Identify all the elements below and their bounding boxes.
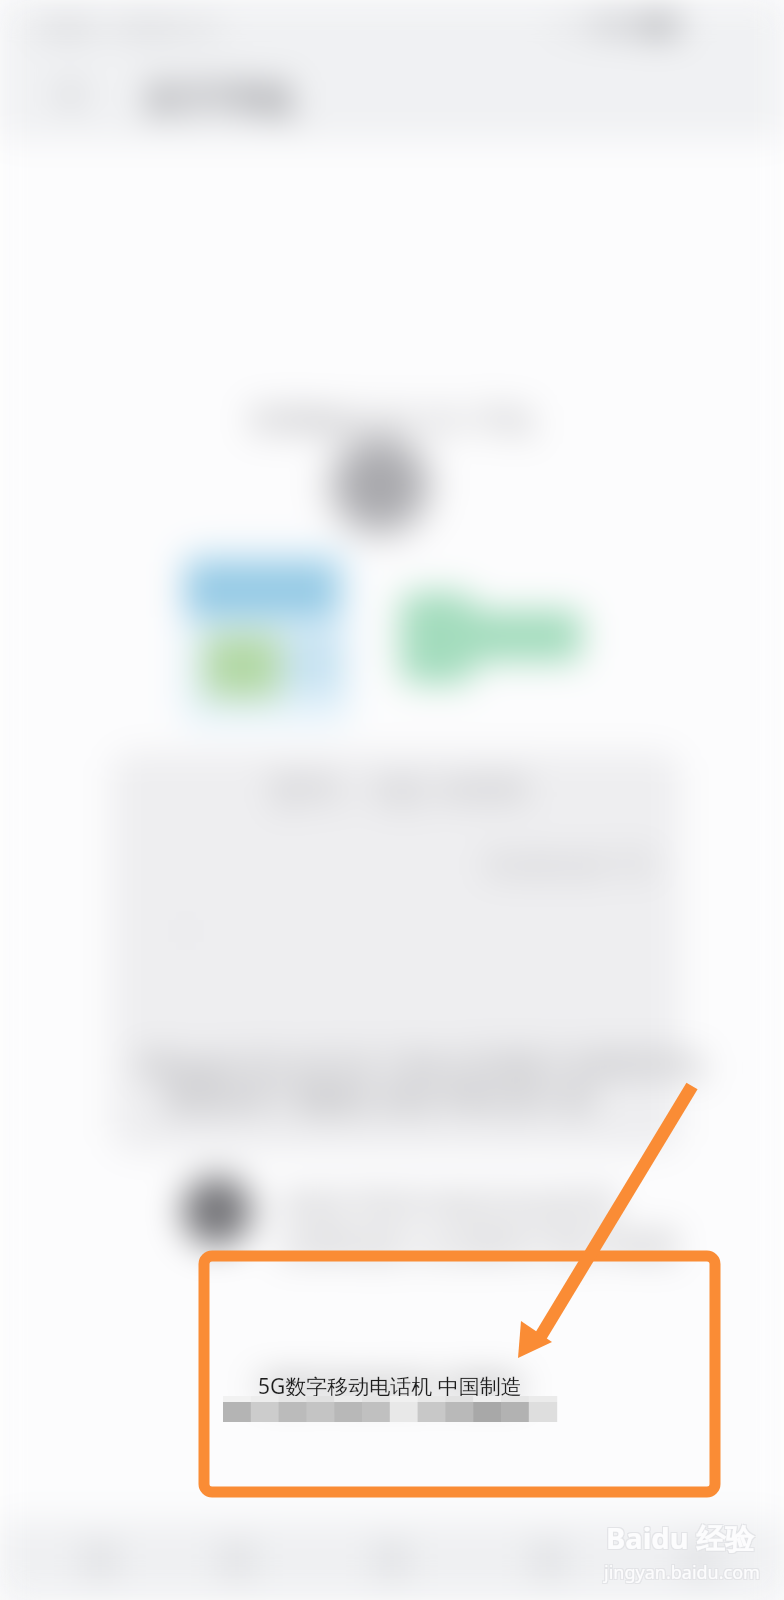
- staticText: 法律信息 认证标识 电子标签: [278, 1222, 679, 1266]
- button[interactable]: Assistant: [650, 1520, 750, 1600]
- staticText: 5G数字移动电话机 中国制造: [258, 1372, 522, 1401]
- staticText: jingyan.baidu.com: [603, 1559, 759, 1584]
- button[interactable]: Recents: [50, 1520, 150, 1600]
- staticText: MagicUI 4.0.0.134 (C00E133R3P4): [140, 1040, 704, 1089]
- staticText: jingyan.baidu.com: [604, 1560, 760, 1585]
- button[interactable]: Back: [342, 1520, 442, 1600]
- staticText: Baidu 经验: [605, 1519, 754, 1559]
- staticText: jingyan.baidu.com: [603, 1561, 759, 1586]
- staticText: Baidu 经验: [607, 1517, 756, 1557]
- button[interactable]: Home: [187, 1520, 287, 1600]
- staticText: jingyan.baidu.com: [605, 1561, 761, 1586]
- staticText: 5G数字移动电话机 中国制造: [258, 1372, 522, 1401]
- staticText: Baidu 经验: [607, 1519, 756, 1559]
- staticText: jingyan.baidu.com: [605, 1559, 761, 1584]
- staticText: Baidu 经验: [605, 1517, 754, 1557]
- staticText: 荣耀畅玩20 5G 手机: [249, 398, 536, 442]
- button[interactable]: Split: [498, 1520, 598, 1600]
- staticText: 安全补丁级别 2021年5月1日: [164, 1076, 596, 1122]
- staticText: Baidu 经验: [606, 1518, 755, 1558]
- staticText: 本机号码与状态信息等: [278, 1184, 618, 1227]
- staticText: 关于手机: [144, 76, 296, 124]
